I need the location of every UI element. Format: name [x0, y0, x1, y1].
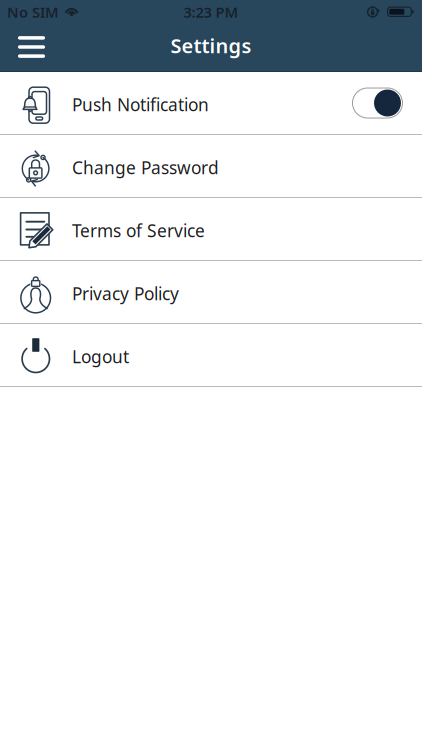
button[interactable]: Logout: [0, 324, 422, 387]
button[interactable]: Privacy Policy: [0, 261, 422, 324]
staticText: No SIM: [7, 2, 59, 22]
button[interactable]: Menu: [0, 24, 63, 72]
staticText: 3:23 PM: [183, 2, 238, 22]
staticText: Settings: [170, 32, 251, 59]
staticText: Logout: [72, 345, 129, 368]
staticText: Push Notification: [72, 93, 209, 116]
staticText: Terms of Service: [72, 219, 205, 242]
button[interactable]: Terms of Service: [0, 198, 422, 261]
button[interactable]: Change Password: [0, 135, 422, 198]
button[interactable]: Push Notification: [0, 72, 422, 135]
staticText: Change Password: [72, 156, 219, 179]
staticText: Privacy Policy: [72, 282, 179, 305]
